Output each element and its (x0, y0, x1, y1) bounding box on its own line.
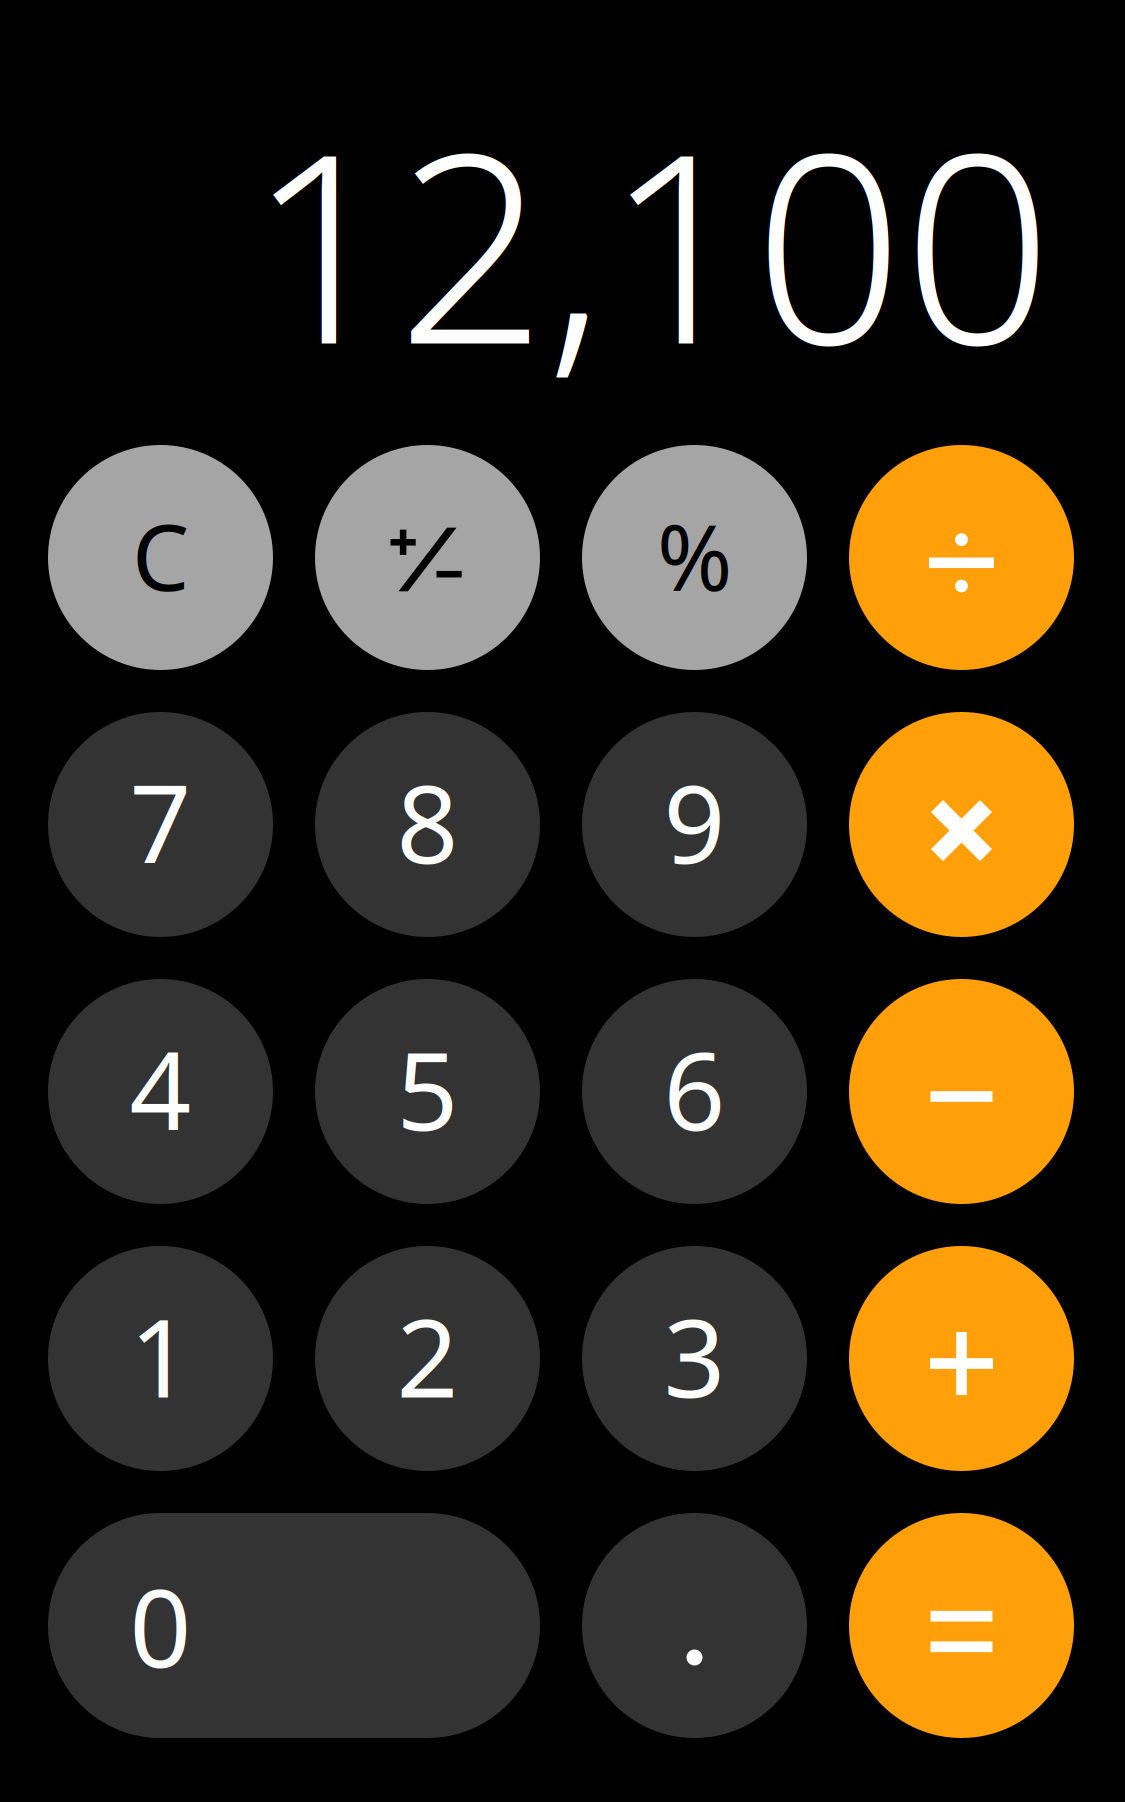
button[interactable]: 9 (582, 712, 807, 937)
button[interactable]: Divide (849, 445, 1074, 670)
button[interactable]: 7 (48, 712, 273, 937)
staticText: 2 (396, 1284, 458, 1427)
button[interactable]: C (48, 445, 273, 670)
button[interactable]: 1 (48, 1246, 273, 1471)
staticText: % (657, 495, 732, 616)
staticText: 0 (129, 1554, 191, 1697)
button[interactable]: Plus (849, 1246, 1074, 1471)
button[interactable]: 3 (582, 1246, 807, 1471)
button[interactable]: Minus (849, 979, 1074, 1204)
staticText: 7 (129, 750, 191, 893)
button[interactable]: Equals (849, 1513, 1074, 1738)
button[interactable]: 5 (315, 979, 540, 1204)
staticText: C (132, 495, 189, 616)
staticText: 1 (129, 1284, 191, 1427)
button[interactable]: 6 (582, 979, 807, 1204)
button[interactable]: 2 (315, 1246, 540, 1471)
staticText: 3 (663, 1284, 725, 1427)
staticText: 5 (396, 1017, 458, 1160)
button[interactable]: Multiply (849, 712, 1074, 937)
staticText: 6 (663, 1017, 725, 1160)
button[interactable]: Decimal point (582, 1513, 807, 1738)
staticText: 9 (663, 750, 725, 893)
button[interactable]: 0 (48, 1513, 540, 1738)
staticText: 12,100 (248, 68, 1052, 415)
staticText: 4 (129, 1017, 191, 1160)
button[interactable]: 8 (315, 712, 540, 937)
button[interactable]: Plus minus (315, 445, 540, 670)
button[interactable]: 4 (48, 979, 273, 1204)
staticText: 8 (396, 750, 458, 893)
button[interactable]: % (582, 445, 807, 670)
